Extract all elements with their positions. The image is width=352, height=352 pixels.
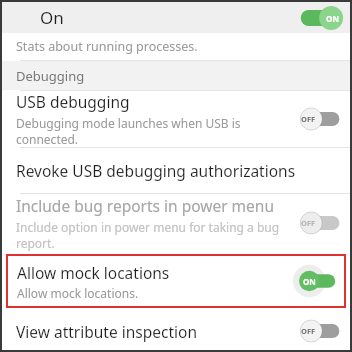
staticText: Allow mock locations. — [17, 285, 139, 301]
staticText: Debugging — [16, 67, 85, 85]
staticText: Allow mock locations — [17, 262, 170, 283]
staticText: View attribute inspection — [16, 321, 197, 342]
staticText: Revoke USB debugging authorizations — [16, 160, 296, 181]
staticText: On — [40, 6, 64, 29]
staticText: ON — [326, 13, 339, 24]
button[interactable]: USB debugging — [2, 91, 350, 147]
button[interactable]: Allow mock locations — [6, 254, 346, 308]
staticText: Stats about running processes. — [16, 38, 198, 55]
button[interactable]: View attribute inspection — [2, 312, 350, 350]
staticText: OFF — [301, 218, 316, 228]
staticText: USB debugging — [16, 91, 130, 112]
button[interactable]: Toggle off — [298, 107, 342, 131]
button[interactable]: Toggle off — [298, 211, 342, 235]
staticText: OFF — [301, 326, 316, 336]
button[interactable]: Allow mock locations toggle, on — [292, 264, 340, 298]
button[interactable]: Toggle off — [298, 319, 342, 343]
staticText: Include option in power menu for taking … — [16, 219, 288, 251]
staticText: ON — [303, 276, 316, 287]
staticText: Include bug reports in power menu — [16, 195, 274, 216]
staticText: Debugging mode launches when USB is conn… — [16, 115, 288, 147]
button[interactable]: Include bug reports in power menu — [2, 194, 350, 252]
button[interactable]: Revoke USB debugging authorizations — [2, 148, 350, 193]
button[interactable]: On — [2, 2, 350, 33]
staticText: OFF — [301, 114, 316, 124]
button[interactable]: Toggle on — [298, 5, 344, 31]
